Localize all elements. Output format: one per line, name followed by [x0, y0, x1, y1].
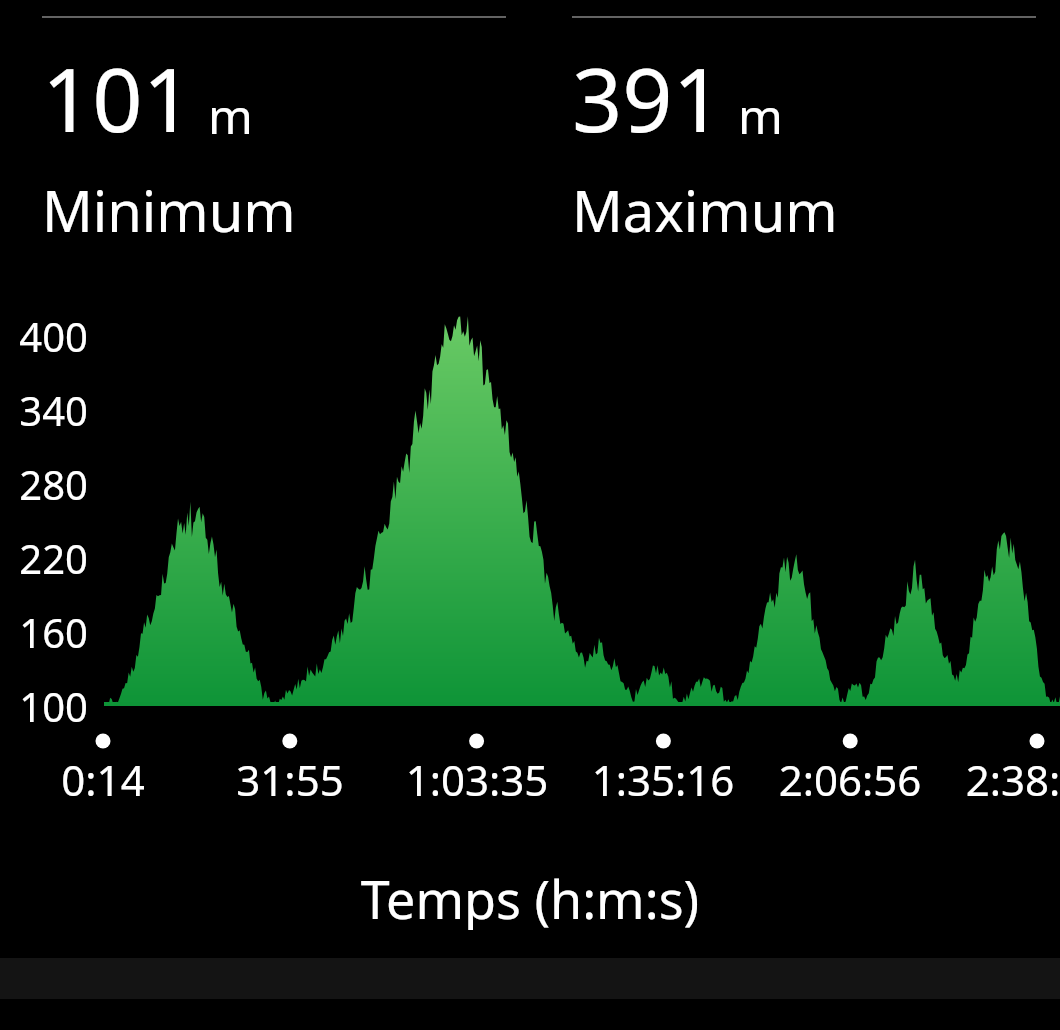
button[interactable]: 391 — [530, 0, 1060, 248]
staticText: Minimum — [42, 172, 296, 248]
staticText: Temps (h:m:s) — [0, 863, 1060, 934]
staticText: Maximum — [572, 172, 838, 248]
staticText: 340 — [0, 383, 88, 437]
button[interactable]: 101 — [0, 0, 530, 248]
staticText: m — [208, 83, 253, 148]
button[interactable]: Elevation profile chart — [0, 265, 1060, 930]
staticText: 1:35:16 — [553, 751, 773, 808]
staticText: 400 — [0, 309, 88, 363]
staticText: 280 — [0, 457, 88, 511]
staticText: 2:06:56 — [740, 751, 960, 808]
staticText: 0:14 — [0, 751, 213, 808]
staticText: 391 — [572, 38, 724, 158]
staticText: 2:38:37 — [927, 751, 1060, 808]
other: Elevation profile chart — [0, 265, 1060, 930]
staticText: m — [738, 83, 783, 148]
staticText: 31:55 — [180, 751, 400, 808]
staticText: 100 — [0, 679, 88, 733]
staticText: 101 — [42, 38, 194, 158]
staticText: 1:03:35 — [367, 751, 587, 808]
staticText: 220 — [0, 531, 88, 585]
staticText: 160 — [0, 605, 88, 659]
